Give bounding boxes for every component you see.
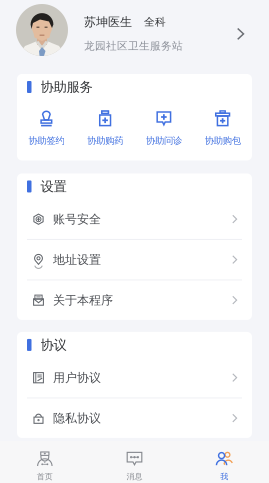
staticText: 隐私协议 <box>53 411 101 425</box>
button[interactable]: 协助问诊 <box>134 110 193 146</box>
staticText: 协议 <box>40 337 66 353</box>
button[interactable]: 账号安全 <box>17 199 252 239</box>
staticText: 账号安全 <box>53 212 101 226</box>
button[interactable]: 用户协议 <box>17 358 252 397</box>
staticText: 苏坤医生 <box>84 15 132 29</box>
button[interactable]: 消息 <box>90 451 179 481</box>
button[interactable]: 地址设置 <box>17 240 252 279</box>
staticText: 协助签约 <box>28 135 64 146</box>
staticText: 关于本程序 <box>53 293 113 307</box>
button[interactable]: 协助签约 <box>17 110 76 146</box>
staticText: 用户协议 <box>53 370 101 385</box>
staticText: 协助服务 <box>40 79 92 95</box>
button[interactable]: 协助购药 <box>76 110 135 146</box>
button[interactable]: 关于本程序 <box>17 280 252 320</box>
button[interactable]: 隐私协议 <box>17 398 252 438</box>
button[interactable]: 苏坤医生 <box>0 0 269 74</box>
staticText: 全科 <box>144 15 166 28</box>
button[interactable]: 首页 <box>0 451 90 481</box>
staticText: 我 <box>220 472 228 481</box>
staticText: 协助购包 <box>205 135 241 146</box>
staticText: 龙园社区卫生服务站 <box>84 39 183 52</box>
staticText: 消息 <box>126 472 142 481</box>
staticText: 协助购药 <box>87 135 123 146</box>
staticText: 协助问诊 <box>146 135 182 146</box>
staticText: 设置 <box>40 178 66 195</box>
staticText: 首页 <box>37 472 53 481</box>
button[interactable]: 协助购包 <box>193 110 252 146</box>
staticText: 地址设置 <box>53 252 101 267</box>
button[interactable]: 我 <box>179 451 269 481</box>
